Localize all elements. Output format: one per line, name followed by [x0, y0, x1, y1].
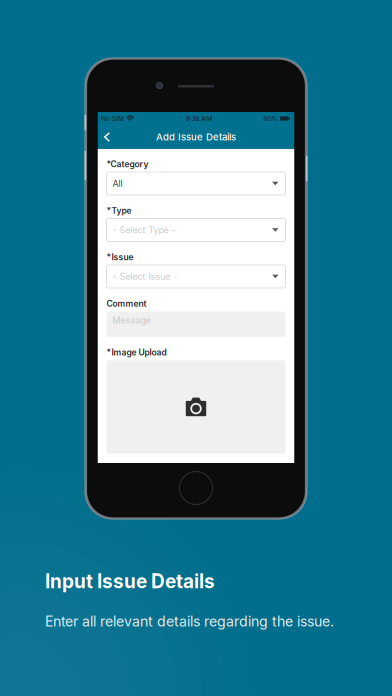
button[interactable]: - Select Type -	[106, 218, 285, 241]
staticText: - Select Issue -	[112, 271, 177, 282]
button[interactable]: Message	[106, 311, 285, 337]
button[interactable]: - Select Issue -	[106, 265, 285, 288]
button[interactable]: Upload image	[106, 360, 285, 453]
staticText: Input Issue Details	[45, 570, 215, 593]
staticText: - Select Type -	[112, 225, 175, 235]
staticText: *Issue	[106, 252, 133, 262]
staticText: No SIM	[101, 114, 124, 123]
staticText: *Image Upload	[106, 347, 166, 358]
staticText: 9:38 AM	[185, 114, 212, 123]
staticText: *Category	[106, 159, 148, 169]
staticText: Comment	[106, 298, 146, 309]
staticText: Add Issue Details	[156, 131, 236, 143]
button[interactable]: All	[106, 172, 285, 195]
staticText: Enter all relevant details regarding the…	[45, 613, 334, 630]
staticText: All	[112, 178, 122, 189]
button[interactable]: Back	[98, 125, 118, 149]
staticText: *Type	[106, 205, 131, 216]
staticText: Message	[112, 315, 150, 326]
staticText: 90%	[263, 114, 278, 123]
